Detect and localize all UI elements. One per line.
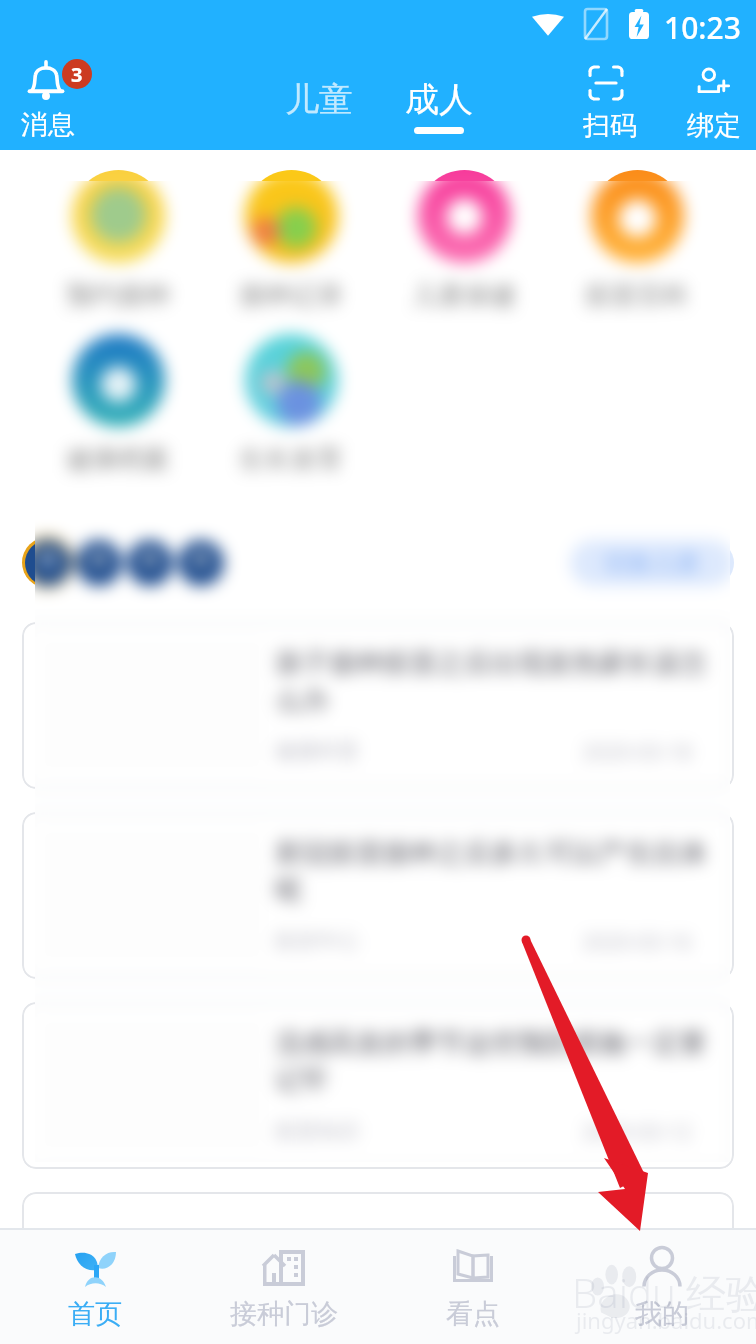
staticText: 切换儿童 (604, 548, 700, 578)
staticText: 切换儿童 (604, 548, 700, 578)
staticText: 首页 (68, 1297, 122, 1331)
staticText: 孩子接种疫苗之后出现发热家长该怎么办 (275, 646, 707, 717)
staticText: 疾控中心 (275, 928, 359, 954)
staticText: 儿童保健 (412, 279, 516, 312)
button[interactable]: 新冠疫苗接种之后多久可以产生抗体呢 (22, 812, 734, 979)
staticText: 新冠疫苗接种之后多久可以产生抗体呢 (275, 836, 707, 907)
staticText: 疫苗知识 (275, 1118, 359, 1144)
button[interactable]: 消息 (12, 54, 96, 146)
staticText: 疾控中心 (275, 928, 359, 954)
button[interactable] (175, 537, 226, 588)
button[interactable] (22, 1192, 734, 1344)
button[interactable]: 儿童保健 (402, 170, 526, 312)
button[interactable]: 生长发育 (229, 334, 353, 476)
button[interactable]: 儿童保健 (402, 170, 526, 312)
button[interactable]: 接种记录 (229, 170, 353, 312)
staticText: 健康科普 (275, 738, 359, 764)
button[interactable]: 流感高发的季节这些预防措施一定要记牢 (22, 1002, 734, 1169)
staticText: 流感高发的季节这些预防措施一定要记牢 (275, 1026, 707, 1097)
staticText: 疫苗百科 (585, 279, 689, 312)
staticText: 健康档案 (66, 443, 170, 476)
button[interactable]: 接种记录 (229, 170, 353, 312)
button[interactable]: 流感高发的季节这些预防措施一定要记牢 (22, 1002, 734, 1169)
staticText: 2020-03-18 (582, 738, 692, 767)
button[interactable] (73, 537, 124, 588)
staticText: 3 (71, 61, 83, 88)
button[interactable]: 预约接种 (56, 170, 180, 312)
button[interactable]: 孩子接种疫苗之后出现发热家长该怎么办 (22, 622, 734, 789)
staticText: 孩子接种疫苗之后出现发热家长该怎么办 (275, 646, 707, 717)
button[interactable]: 健康档案 (56, 334, 180, 476)
staticText: 扫码 (583, 109, 637, 143)
staticText: 儿童保健 (412, 279, 516, 312)
button[interactable] (73, 537, 124, 588)
staticText: 2020-03-12 (582, 1118, 692, 1147)
button[interactable]: 预约接种 (56, 170, 180, 312)
staticText: 2020-03-16 (582, 928, 692, 957)
button[interactable]: 儿童 (277, 72, 361, 136)
button[interactable] (124, 537, 175, 588)
staticText: 成人 (405, 78, 473, 121)
staticText: 2020-03-18 (582, 738, 692, 767)
staticText: 流感高发的季节这些预防措施一定要记牢 (275, 1026, 707, 1097)
staticText: 预约接种 (66, 279, 170, 312)
button[interactable] (175, 537, 226, 588)
button[interactable]: 疫苗百科 (575, 170, 699, 312)
button[interactable]: 生长发育 (229, 334, 353, 476)
staticText: 2020-03-12 (582, 1118, 692, 1147)
button[interactable]: 首页 (0, 1230, 189, 1344)
button[interactable]: 健康档案 (56, 334, 180, 476)
button[interactable] (22, 537, 73, 588)
staticText: 新冠疫苗接种之后多久可以产生抗体呢 (275, 836, 707, 907)
staticText: 疫苗百科 (585, 279, 689, 312)
staticText: 儿童 (285, 78, 353, 121)
staticText: 生长发育 (239, 443, 343, 476)
staticText: 健康科普 (275, 738, 359, 764)
staticText: 绑定 (687, 109, 741, 143)
staticText: 看点 (446, 1297, 500, 1331)
staticText: 接种记录 (239, 279, 343, 312)
button[interactable]: 我的 (567, 1230, 756, 1344)
button[interactable]: 成人 (397, 72, 481, 140)
staticText: 生长发育 (239, 443, 343, 476)
button[interactable]: 切换儿童 (570, 540, 734, 586)
staticText: 我的 (635, 1297, 689, 1331)
staticText: 2020-03-16 (582, 928, 692, 957)
button[interactable]: 孩子接种疫苗之后出现发热家长该怎么办 (22, 622, 734, 789)
staticText: 接种记录 (239, 279, 343, 312)
button[interactable]: 接种门诊 (189, 1230, 378, 1344)
button[interactable]: 看点 (378, 1230, 567, 1344)
button[interactable]: 扫码 (573, 54, 641, 146)
button[interactable]: 疫苗百科 (575, 170, 699, 312)
staticText: jingyan.baidu.com (576, 1305, 756, 1335)
button[interactable] (22, 537, 73, 588)
button[interactable]: 绑定 (677, 54, 745, 146)
staticText: 健康档案 (66, 443, 170, 476)
staticText: 预约接种 (66, 279, 170, 312)
button[interactable] (22, 1192, 734, 1344)
staticText: 疫苗知识 (275, 1118, 359, 1144)
staticText: 接种门诊 (230, 1297, 338, 1331)
staticText: Baidu 经验 (572, 1265, 756, 1320)
button[interactable] (124, 537, 175, 588)
staticText: 消息 (21, 108, 75, 142)
button[interactable]: 切换儿童 (570, 540, 734, 586)
staticText: 10:23 (664, 7, 741, 48)
button[interactable]: 新冠疫苗接种之后多久可以产生抗体呢 (22, 812, 734, 979)
